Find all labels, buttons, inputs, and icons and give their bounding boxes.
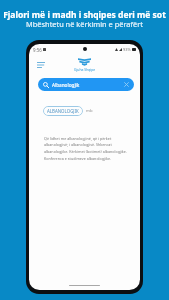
staticText: Gjuha Shqipe (74, 67, 96, 72)
staticText: Që lidhet me albanologjinë, që i përket … (44, 136, 132, 161)
staticText: Albanologjik (52, 82, 80, 88)
staticText: 9:56 (33, 47, 42, 53)
staticText: Fjalori më i madh i shqipes deri më sot (0, 9, 169, 21)
button[interactable]: Albanologjik (38, 78, 134, 91)
staticText: 93% (123, 47, 131, 52)
staticText: mb (86, 108, 93, 114)
button[interactable]: Open navigation menu (33, 57, 49, 73)
staticText: ALBANOLOGJIK (47, 108, 79, 114)
button[interactable]: ALBANOLOGJIK (43, 106, 83, 116)
staticText: Mbështetu në kërkimin e përafërt (0, 19, 169, 29)
